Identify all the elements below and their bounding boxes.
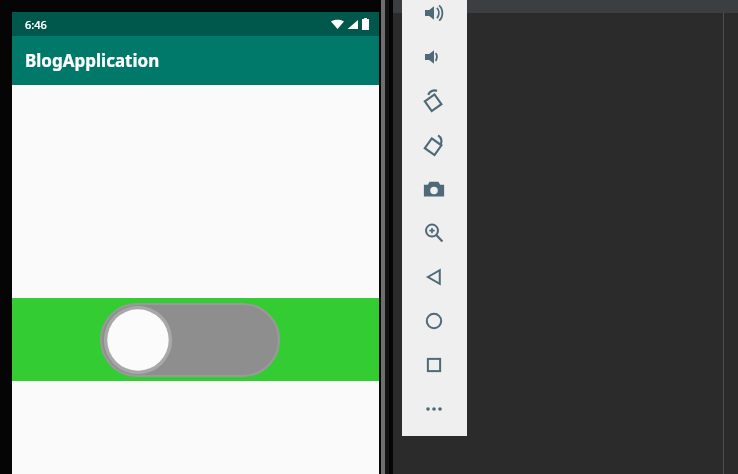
- button[interactable]: Home: [412, 305, 456, 337]
- button[interactable]: Rotate right: [412, 129, 456, 161]
- button[interactable]: Take screenshot: [412, 173, 456, 205]
- button[interactable]: Volume down: [412, 41, 456, 73]
- button[interactable]: Zoom: [412, 217, 456, 249]
- button[interactable]: Volume up: [412, 0, 456, 29]
- button[interactable]: Toggle switch: [12, 298, 379, 381]
- button[interactable]: Rotate left: [412, 85, 456, 117]
- button[interactable]: Overview: [412, 349, 456, 381]
- button[interactable]: More: [412, 393, 456, 425]
- staticText: BlogApplication: [25, 49, 160, 72]
- staticText: 6:46: [25, 17, 47, 32]
- button[interactable]: Back: [412, 261, 456, 293]
- button[interactable]: Toggle switch: [101, 304, 279, 376]
